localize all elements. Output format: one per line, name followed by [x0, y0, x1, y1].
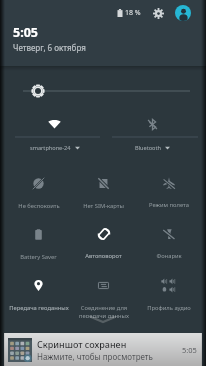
button[interactable]: Профиль аудио [136, 267, 201, 318]
staticText: Не беспокоить [18, 202, 60, 210]
button[interactable]: Передача геоданных [6, 267, 71, 318]
button[interactable]: Brightness [0, 81, 206, 101]
button[interactable]: smartphone-24 [6, 104, 103, 156]
button[interactable]: Не беспокоить [6, 165, 71, 216]
button[interactable]: Соединение для передачи данных [71, 267, 136, 318]
staticText: Автоповорот [85, 252, 122, 260]
staticText: 5:05 [13, 24, 38, 41]
staticText: 5:05 [182, 345, 197, 355]
button[interactable]: Режим полета [136, 165, 201, 216]
button[interactable]: Bluetooth [103, 104, 201, 156]
staticText: Передача геоданных [9, 304, 69, 312]
button[interactable]: Settings [149, 4, 167, 22]
staticText: Четверг, 6 октября [13, 42, 86, 53]
button[interactable]: User profile [175, 5, 191, 21]
staticText: Нет SIM-карты [83, 202, 124, 210]
staticText: Скриншот сохранен [37, 338, 127, 350]
staticText: Соединение для передачи данных [79, 304, 129, 318]
staticText: smartphone-24 [30, 144, 71, 152]
staticText: Режим полета [149, 201, 189, 209]
button[interactable]: Battery Saver [6, 216, 71, 267]
button[interactable]: Нет SIM-карты [71, 165, 136, 216]
staticText: 18 % [125, 8, 141, 18]
button[interactable]: Скриншот сохранен [4, 333, 202, 366]
button[interactable]: Фонарик [136, 216, 201, 267]
staticText: Battery Saver [20, 253, 57, 261]
staticText: Фонарик [156, 252, 182, 260]
staticText: Нажмите, чтобы просмотреть [37, 351, 153, 362]
staticText: Профиль аудио [147, 304, 191, 312]
staticText: Bluetooth [135, 144, 161, 152]
button[interactable]: Автоповорот [71, 216, 136, 267]
